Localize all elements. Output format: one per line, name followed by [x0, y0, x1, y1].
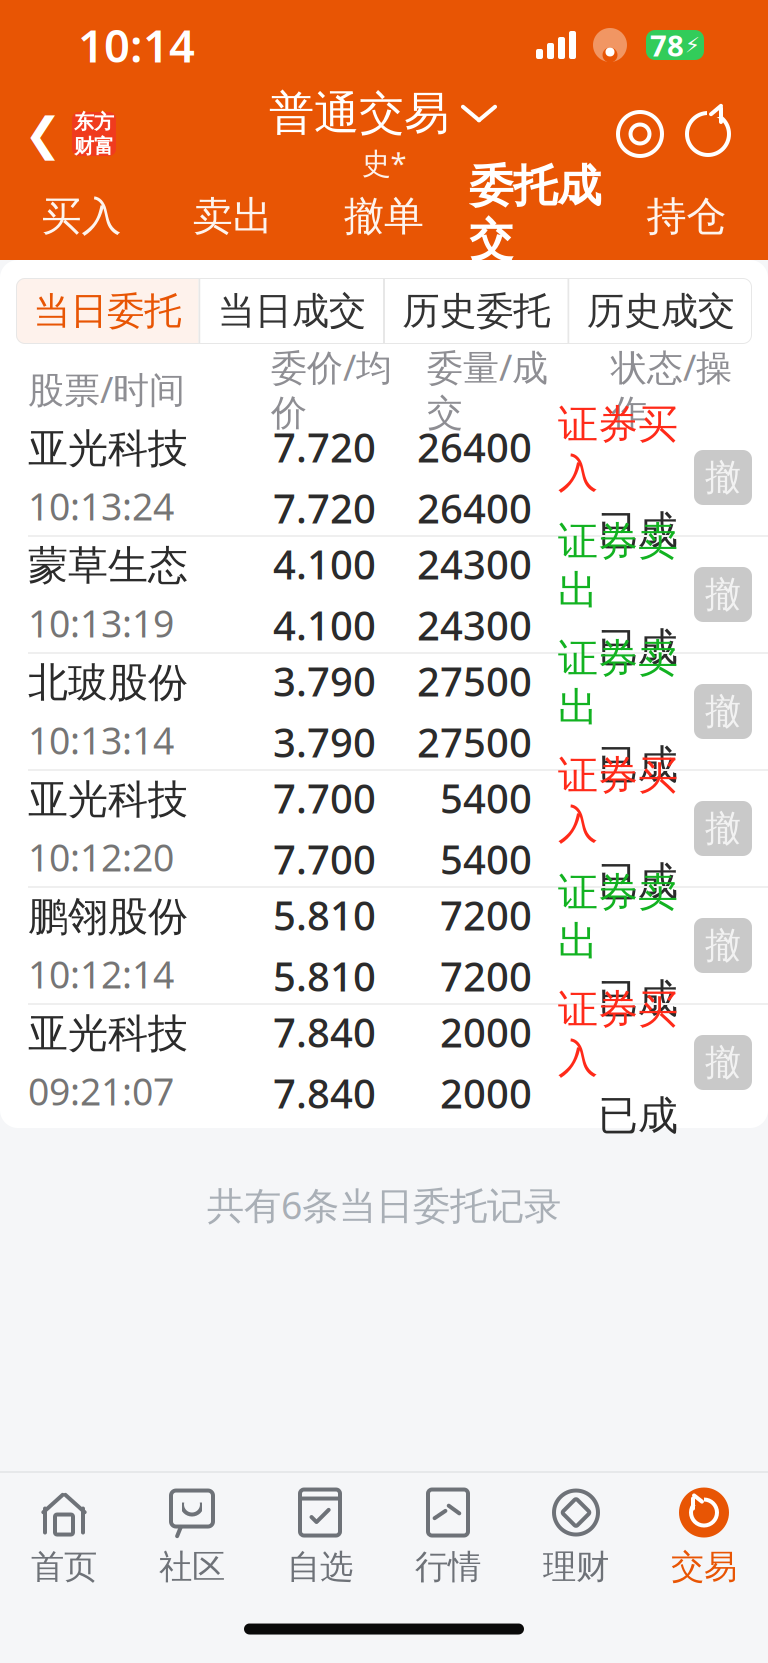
staticText: 已成 — [598, 740, 678, 789]
button[interactable]: 撤 — [694, 450, 752, 505]
staticText: 7.840 — [273, 1005, 376, 1058]
staticText: 股票/时间 — [28, 365, 185, 413]
staticText: 7.720 — [273, 481, 376, 535]
staticText: 委价/均价 — [271, 343, 392, 435]
staticText: 鹏翎股份 — [28, 892, 188, 941]
staticText: 4.100 — [273, 598, 376, 652]
staticText: 4.100 — [273, 537, 376, 590]
button[interactable]: 历史成交 — [569, 278, 752, 344]
staticText: 2000 — [440, 1066, 532, 1120]
button[interactable]: 历史委托 — [385, 278, 567, 344]
button[interactable]: 蒙草生态 — [0, 537, 768, 652]
staticText: 已成 — [598, 623, 678, 672]
button[interactable]: 亚光科技 — [0, 420, 768, 535]
button[interactable]: 当日委托 — [16, 278, 198, 344]
button[interactable]: 撤 — [694, 918, 752, 973]
staticText: 亚光科技 — [28, 1009, 188, 1058]
staticText: 10:12:20 — [28, 832, 174, 882]
button[interactable]: 社区 — [128, 1489, 256, 1585]
staticText: 撤 — [705, 923, 741, 968]
staticText: 证券买入 — [558, 400, 678, 498]
button[interactable]: 持仓 — [611, 178, 762, 260]
staticText: 撤 — [705, 455, 741, 500]
button[interactable]: 自选 — [256, 1489, 384, 1585]
staticText: 7200 — [440, 888, 532, 941]
staticText: 证券买入 — [558, 751, 678, 849]
staticText: 证券卖出 — [558, 634, 678, 732]
staticText: 委托成交 — [469, 159, 601, 267]
staticText: 已成 — [598, 857, 678, 906]
staticText: 2000 — [440, 1005, 532, 1058]
staticText: 已成 — [598, 974, 678, 1023]
button[interactable]: 亚光科技 — [0, 1005, 768, 1120]
button[interactable]: 设置 — [608, 102, 672, 166]
button[interactable]: 当日成交 — [200, 278, 383, 344]
staticText: 证券卖出 — [558, 517, 678, 615]
staticText: 撤 — [705, 689, 741, 734]
button[interactable]: 行情 — [384, 1489, 512, 1585]
staticText: 自选 — [287, 1546, 353, 1587]
staticText: 26400 — [417, 481, 532, 535]
staticText: 3.790 — [273, 654, 376, 707]
button[interactable]: 撤 — [694, 567, 752, 622]
staticText: 东方 — [74, 109, 114, 134]
staticText: 10:12:14 — [28, 949, 174, 999]
staticText: 证券卖出 — [558, 868, 678, 966]
button[interactable]: 鹏翎股份 — [0, 888, 768, 1003]
button[interactable]: 委托成交 — [460, 178, 611, 260]
staticText: 撤 — [705, 1040, 741, 1085]
staticText: 3.790 — [273, 715, 376, 769]
staticText: 10:13:19 — [28, 598, 174, 648]
staticText: 7.700 — [273, 771, 376, 824]
staticText: 委量/成交 — [427, 343, 548, 435]
staticText: 持仓 — [646, 192, 726, 241]
staticText: 已成 — [598, 506, 678, 555]
staticText: 史* — [361, 143, 406, 182]
staticText: 5.810 — [273, 888, 376, 941]
staticText: 26400 — [417, 420, 532, 473]
staticText: 5400 — [440, 832, 532, 886]
staticText: 27500 — [417, 654, 532, 707]
button[interactable]: 买入 — [6, 178, 157, 260]
staticText: 财富 — [74, 134, 114, 159]
staticText: 5400 — [440, 771, 532, 824]
staticText: ❮ — [24, 108, 62, 160]
staticText: 理财 — [543, 1546, 609, 1587]
staticText: 10:13:14 — [28, 715, 174, 765]
staticText: 卖出 — [193, 192, 273, 241]
button[interactable]: 理财 — [512, 1489, 640, 1585]
staticText: 普通交易 — [269, 86, 449, 141]
staticText: 行情 — [415, 1546, 481, 1587]
button[interactable]: 首页 — [0, 1489, 128, 1585]
staticText: 买入 — [42, 192, 122, 241]
staticText: 10:14 — [78, 15, 195, 75]
button[interactable]: 撤 — [694, 684, 752, 739]
staticText: 交易 — [671, 1546, 737, 1587]
staticText: 历史成交 — [587, 288, 735, 334]
button[interactable]: 北玻股份 — [0, 654, 768, 769]
button[interactable]: 交易 — [640, 1489, 768, 1585]
button[interactable]: 撤 — [694, 801, 752, 856]
staticText: 5.810 — [273, 949, 376, 1003]
staticText: 78 — [650, 25, 684, 64]
button[interactable]: 返回 — [10, 98, 130, 170]
staticText: 撤 — [705, 572, 741, 617]
staticText: 证券买入 — [558, 985, 678, 1083]
staticText: 撤单 — [344, 192, 424, 241]
button[interactable]: 撤单 — [308, 178, 460, 260]
button[interactable]: 刷新 — [676, 102, 740, 166]
staticText: 状态/操作 — [611, 343, 732, 435]
staticText: 当日成交 — [218, 288, 366, 334]
staticText: 社区 — [159, 1546, 225, 1587]
button[interactable]: 撤 — [694, 1035, 752, 1090]
staticText: 24300 — [417, 537, 532, 590]
button[interactable]: 卖出 — [157, 178, 308, 260]
staticText: 24300 — [417, 598, 532, 652]
staticText: 蒙草生态 — [28, 541, 188, 590]
staticText: 7.840 — [273, 1066, 376, 1120]
button[interactable]: 亚光科技 — [0, 771, 768, 886]
staticText: 亚光科技 — [28, 424, 188, 473]
staticText: 共有6条当日委托记录 — [207, 1180, 561, 1230]
staticText: 7.700 — [273, 832, 376, 886]
staticText: 7.720 — [273, 420, 376, 473]
